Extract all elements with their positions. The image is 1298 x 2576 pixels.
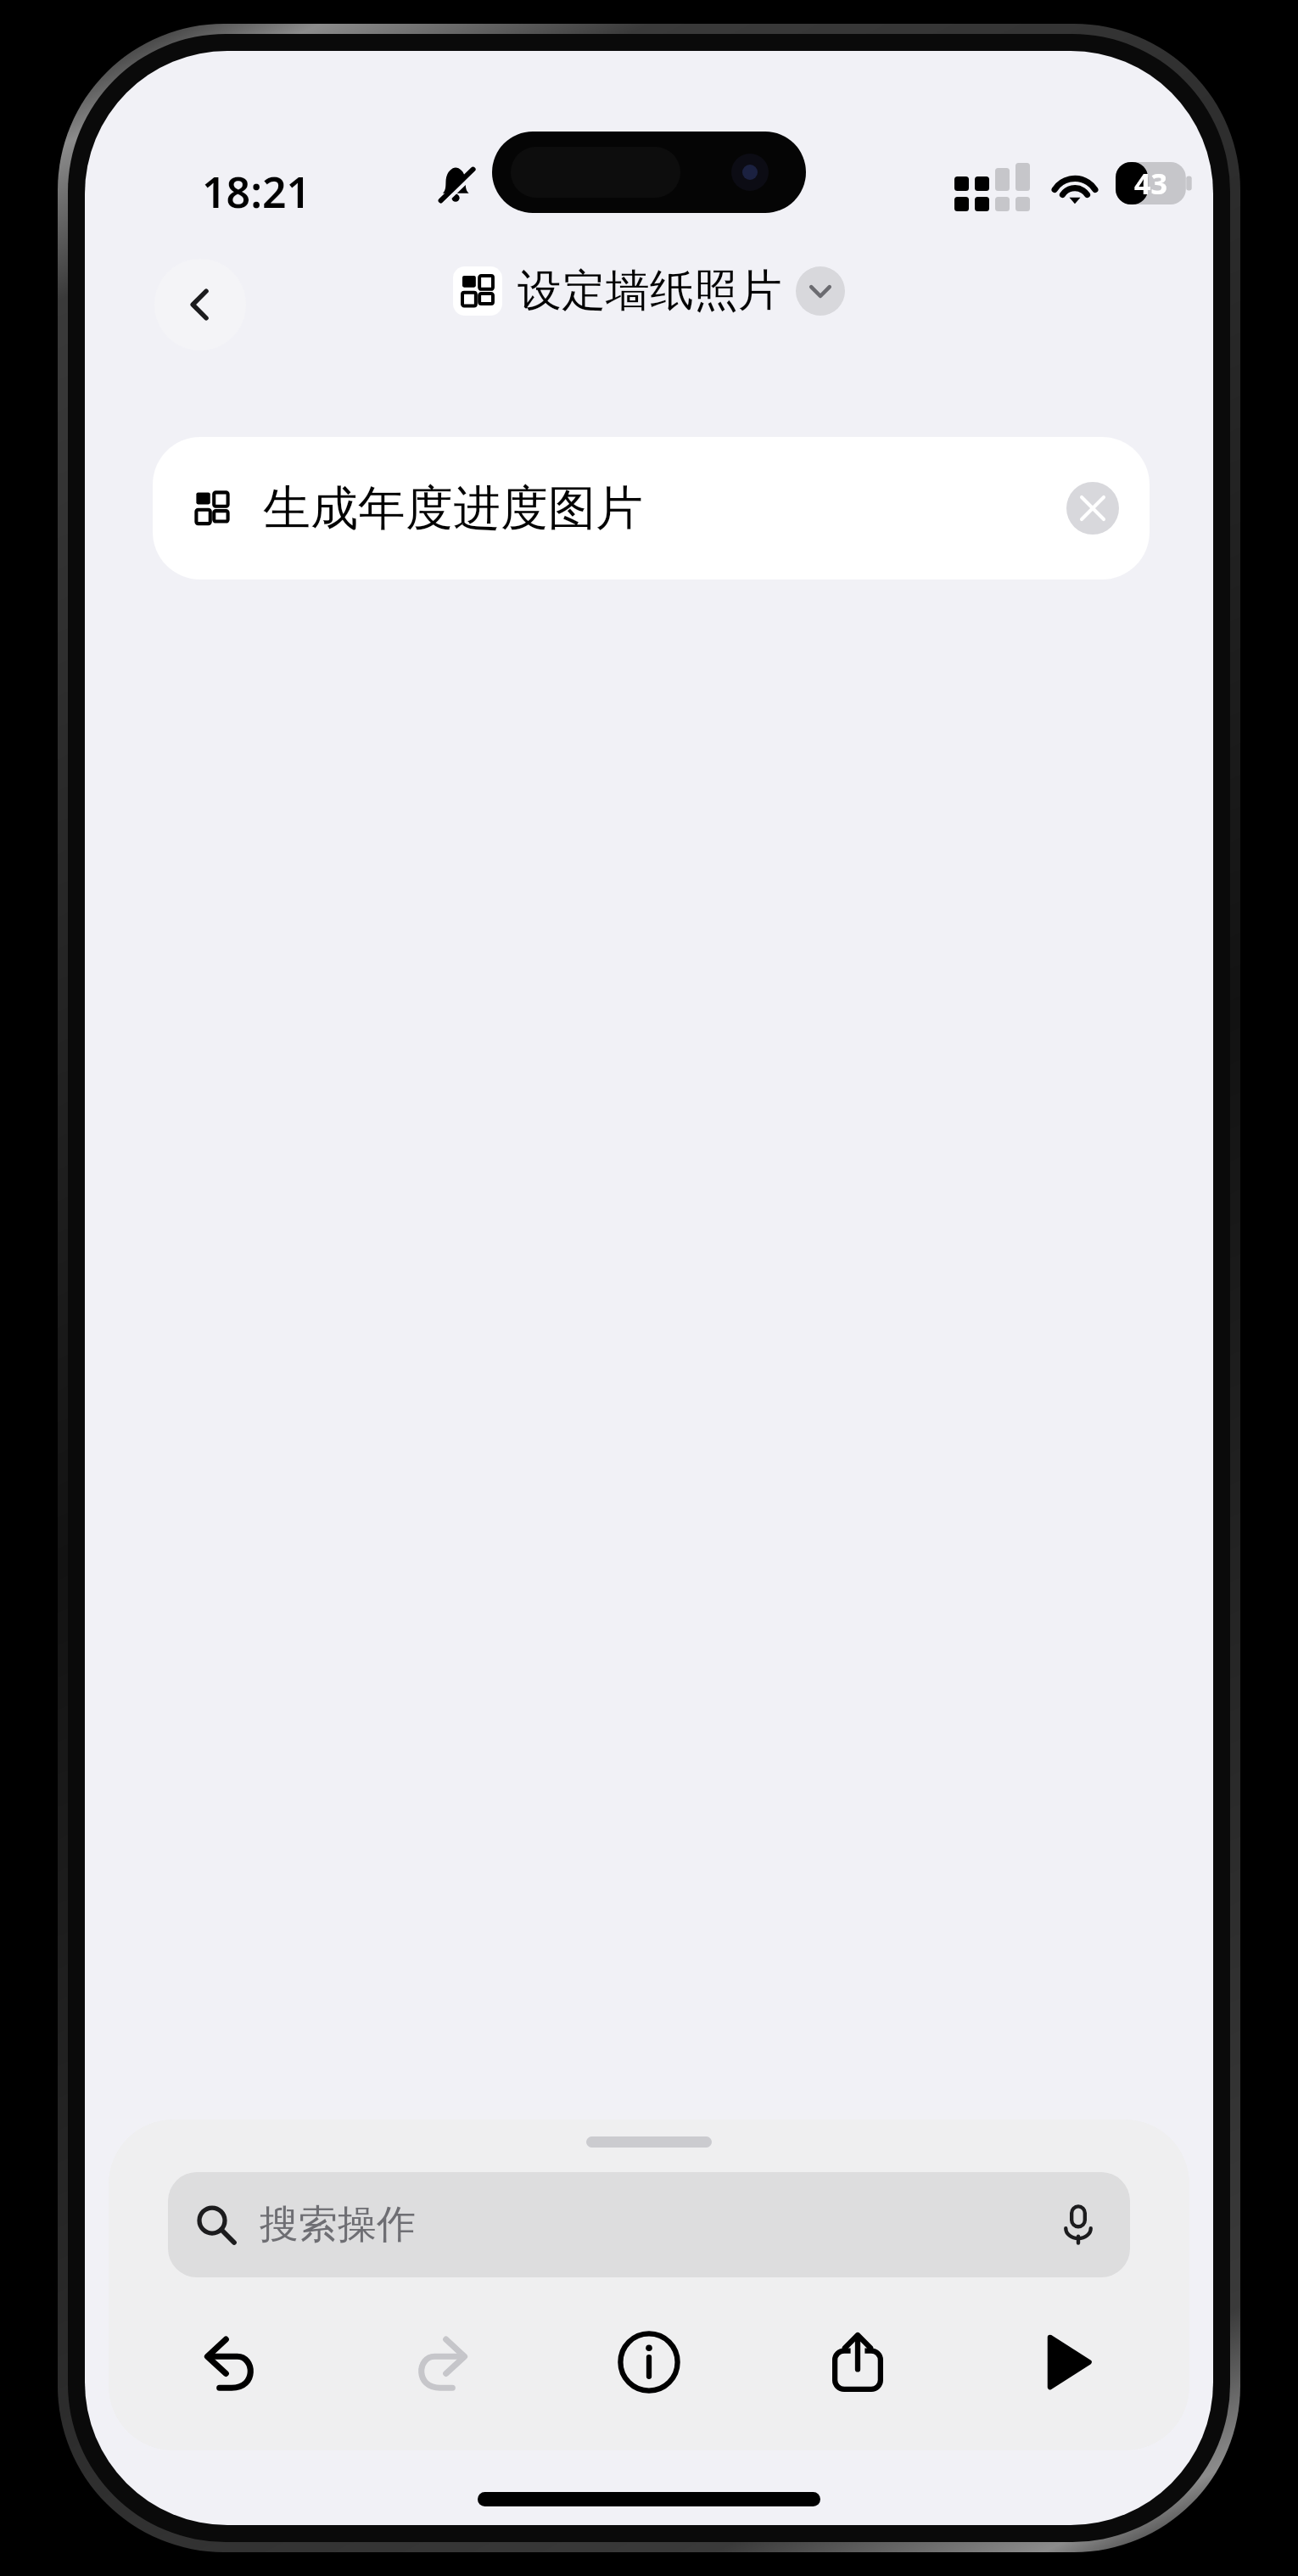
staticText: 43 [1134, 164, 1167, 203]
button[interactable]: 详细信息 [585, 2311, 713, 2413]
button[interactable]: 删除 [1066, 482, 1119, 535]
staticText: 生成年度进度图片 [263, 479, 643, 539]
button[interactable]: 返回 [154, 259, 246, 350]
button[interactable]: 生成年度进度图片 [153, 437, 1150, 580]
button[interactable]: 运行 [1003, 2311, 1130, 2413]
button[interactable]: 更多选项 [796, 266, 845, 316]
staticText: 设定墙纸照片 [518, 263, 782, 319]
button[interactable]: 搜索操作 [168, 2172, 1130, 2277]
staticText: 18:21 [202, 163, 311, 221]
staticText: 搜索操作 [260, 2200, 416, 2249]
button[interactable]: 分享 [794, 2311, 921, 2413]
button[interactable]: 撤销 [168, 2311, 295, 2413]
other: 语音输入 [1059, 2205, 1098, 2244]
button[interactable]: 重做 [377, 2311, 504, 2413]
